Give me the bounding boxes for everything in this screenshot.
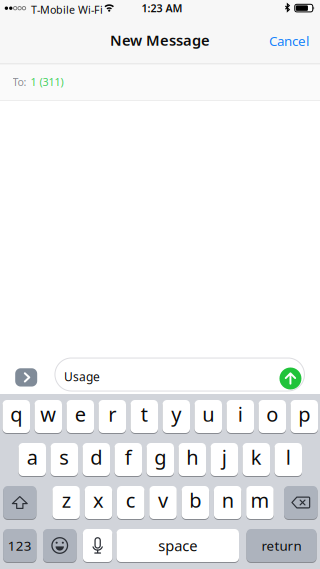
- button[interactable]: z: [52, 485, 80, 519]
- button[interactable]: l: [274, 442, 302, 476]
- button[interactable]: s: [50, 442, 78, 476]
- button[interactable]: To: 1 (311): [0, 64, 320, 101]
- button[interactable]: Numbers: [3, 528, 36, 562]
- staticText: t: [141, 401, 148, 427]
- button[interactable]: y: [162, 399, 190, 433]
- staticText: To:: [12, 75, 26, 89]
- button[interactable]: h: [178, 442, 206, 476]
- button[interactable]: b: [182, 485, 209, 519]
- button[interactable]: q: [2, 399, 30, 433]
- button[interactable]: d: [82, 442, 110, 476]
- button[interactable]: Send: [279, 367, 301, 389]
- button[interactable]: Dictate: [83, 528, 112, 562]
- button[interactable]: Expand message apps: [15, 368, 37, 386]
- staticText: i: [238, 401, 243, 427]
- staticText: 123: [8, 537, 32, 554]
- staticText: e: [75, 401, 86, 427]
- button[interactable]: a: [18, 442, 46, 476]
- button[interactable]: return: [246, 528, 316, 562]
- staticText: c: [126, 487, 136, 513]
- button[interactable]: r: [98, 399, 126, 433]
- button[interactable]: Shift: [3, 485, 36, 519]
- button[interactable]: u: [194, 399, 222, 433]
- staticText: k: [251, 444, 262, 470]
- staticText: Usage: [64, 368, 100, 384]
- staticText: Cancel: [269, 32, 309, 50]
- button[interactable]: p: [290, 399, 318, 433]
- button[interactable]: w: [34, 399, 62, 433]
- staticText: b: [189, 487, 201, 513]
- staticText: g: [154, 444, 166, 470]
- button[interactable]: Message field: Usage: [55, 358, 304, 391]
- button[interactable]: j: [210, 442, 238, 476]
- staticText: New Message: [110, 30, 210, 50]
- button[interactable]: x: [85, 485, 112, 519]
- button[interactable]: v: [149, 485, 177, 519]
- button[interactable]: c: [117, 485, 144, 519]
- button[interactable]: n: [214, 485, 241, 519]
- staticText: u: [202, 401, 214, 427]
- button[interactable]: Cancel: [269, 32, 309, 50]
- button[interactable]: f: [114, 442, 142, 476]
- button[interactable]: k: [242, 442, 270, 476]
- button[interactable]: t: [130, 399, 158, 433]
- staticText: T-Mobile Wi-Fi: [31, 2, 103, 17]
- staticText: l: [286, 444, 291, 470]
- staticText: s: [59, 444, 69, 470]
- button[interactable]: m: [246, 485, 274, 519]
- button[interactable]: space: [116, 528, 239, 562]
- staticText: f: [125, 444, 132, 470]
- button[interactable]: e: [66, 399, 94, 433]
- button[interactable]: g: [146, 442, 174, 476]
- staticText: 1 (311): [30, 75, 63, 89]
- button[interactable]: Emoji: [43, 528, 76, 562]
- staticText: y: [171, 401, 181, 427]
- staticText: return: [261, 537, 301, 554]
- button[interactable]: o: [258, 399, 286, 433]
- staticText: n: [222, 487, 234, 513]
- staticText: j: [222, 444, 227, 470]
- staticText: q: [10, 401, 22, 427]
- staticText: r: [108, 401, 116, 427]
- staticText: o: [266, 401, 278, 427]
- button[interactable]: Delete: [284, 485, 317, 519]
- staticText: d: [90, 444, 102, 470]
- button[interactable]: i: [226, 399, 254, 433]
- staticText: 1:23 AM: [141, 1, 182, 15]
- staticText: v: [158, 487, 168, 513]
- staticText: z: [62, 487, 71, 513]
- staticText: p: [298, 401, 310, 427]
- staticText: w: [40, 401, 56, 427]
- staticText: m: [250, 487, 269, 513]
- staticText: x: [93, 487, 104, 513]
- staticText: a: [27, 444, 38, 470]
- staticText: space: [158, 536, 197, 555]
- staticText: h: [186, 444, 198, 470]
